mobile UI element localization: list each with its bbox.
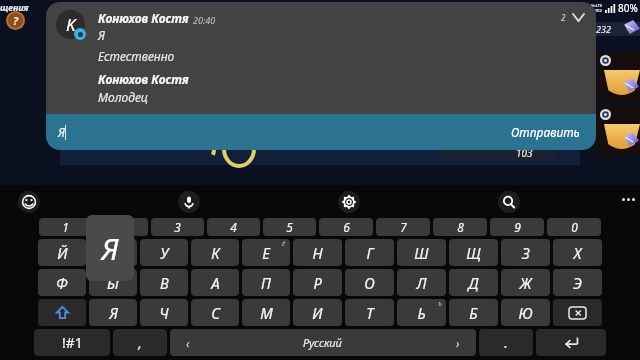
button[interactable]: 1 (39, 218, 92, 236)
button[interactable]: 2 (95, 218, 148, 236)
button[interactable]: О (345, 269, 394, 296)
button[interactable]: Ь (397, 299, 446, 326)
staticText: Б (469, 303, 478, 323)
button[interactable]: Ю (501, 299, 550, 326)
button[interactable]: 8 (433, 218, 487, 236)
button[interactable]: И (293, 299, 342, 326)
button[interactable]: Ц (89, 239, 137, 266)
staticText: Естественно (98, 48, 175, 64)
button[interactable]: Д (449, 269, 498, 296)
staticText: 80% (618, 1, 638, 15)
staticText: 6 (343, 219, 350, 235)
staticText: Ё (282, 240, 286, 248)
staticText: 3 (174, 219, 181, 235)
button[interactable]: 4 (207, 218, 260, 236)
button[interactable]: Г (345, 239, 394, 266)
staticText: Ц (108, 243, 119, 263)
button[interactable]: Е (242, 239, 290, 266)
staticText: И (312, 303, 323, 323)
button[interactable]: Я (46, 114, 596, 150)
staticText: О (364, 273, 375, 293)
staticText: Р (313, 273, 322, 293)
button[interactable]: Я (89, 299, 137, 326)
staticText: Ы (107, 273, 119, 293)
button[interactable]: Enter (536, 329, 606, 356)
staticText: Щ (466, 243, 481, 263)
button[interactable]: Т (345, 299, 394, 326)
button[interactable]: Ш (397, 239, 446, 266)
button[interactable]: А (191, 269, 239, 296)
button[interactable]: Ы (89, 269, 137, 296)
button[interactable]: Отправить (507, 121, 584, 143)
button[interactable]: Х (553, 239, 602, 266)
staticText: З (522, 243, 530, 263)
button[interactable]: , (113, 329, 167, 356)
staticText: Г (366, 243, 374, 263)
button[interactable]: Л (397, 269, 446, 296)
button[interactable]: П (242, 269, 290, 296)
staticText: Ъ (438, 300, 442, 308)
staticText: , (138, 333, 142, 352)
button[interactable]: Р (293, 269, 342, 296)
button[interactable]: М (242, 299, 290, 326)
staticText: А (211, 273, 220, 293)
staticText: 7 (400, 219, 407, 235)
staticText: Я (109, 303, 118, 323)
staticText: 9 (514, 219, 521, 235)
staticText: Отправить (511, 124, 580, 140)
button[interactable]: Voice input (178, 191, 200, 213)
staticText: Е (262, 243, 270, 263)
button[interactable]: Ч (140, 299, 188, 326)
staticText: Л (416, 273, 427, 293)
staticText: Конюхов Костя (98, 71, 189, 87)
button[interactable]: . (479, 329, 533, 356)
button[interactable]: Ж (501, 269, 550, 296)
button[interactable]: 3 (151, 218, 204, 236)
button[interactable]: Э (553, 269, 602, 296)
button[interactable]: Б (449, 299, 498, 326)
button[interactable]: Щ (449, 239, 498, 266)
button[interactable]: More options (617, 194, 640, 205)
staticText: 103 (516, 146, 533, 160)
staticText: Н (312, 243, 323, 263)
staticText: Д (468, 273, 479, 293)
button[interactable]: 9 (490, 218, 544, 236)
button[interactable]: К (191, 239, 239, 266)
button[interactable]: !#1 (34, 329, 110, 356)
staticText: 1 (62, 219, 69, 235)
button[interactable]: 7 (376, 218, 430, 236)
button[interactable]: Emoji (18, 191, 40, 213)
button[interactable]: Keyboard settings (338, 191, 360, 213)
staticText: Я (101, 228, 119, 269)
staticText: 0 (571, 219, 578, 235)
button[interactable]: Н (293, 239, 342, 266)
staticText: 5 (286, 219, 293, 235)
button[interactable]: 0 (547, 218, 601, 236)
staticText: Молодец (98, 89, 148, 105)
button[interactable]: З (501, 239, 550, 266)
staticText: 232 (596, 23, 611, 35)
button[interactable]: 5 (263, 218, 316, 236)
staticText: щения (0, 1, 29, 13)
staticText: 2 (561, 12, 566, 23)
staticText: 8 (457, 219, 464, 235)
button[interactable]: В (140, 269, 188, 296)
button[interactable]: У (140, 239, 188, 266)
staticText: Конюхов Костя (98, 10, 189, 26)
staticText: VoLTE (591, 3, 603, 8)
button[interactable]: Ф (38, 269, 86, 296)
staticText: !#1 (62, 333, 83, 352)
button[interactable]: С (191, 299, 239, 326)
staticText: › (456, 335, 460, 351)
button[interactable]: ‹ (170, 329, 476, 356)
button[interactable]: 6 (319, 218, 373, 236)
button[interactable]: Й (38, 239, 86, 266)
button[interactable]: Collapse notification (557, 10, 588, 25)
button[interactable]: Backspace (553, 299, 602, 326)
button[interactable]: Search (498, 191, 520, 213)
staticText: П (261, 273, 271, 293)
staticText: LTE2 (593, 8, 602, 13)
staticText: К (211, 243, 220, 263)
button[interactable]: Shift (38, 299, 86, 326)
